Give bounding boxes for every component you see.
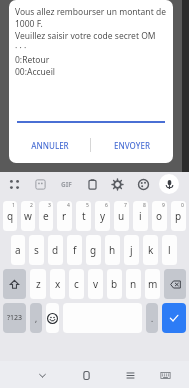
- button[interactable]: ANNULER: [9, 133, 90, 157]
- staticText: 00:Accueil: [15, 66, 56, 78]
- button[interactable]: k: [143, 235, 158, 265]
- button[interactable]: l: [162, 235, 177, 265]
- button[interactable]: g: [86, 235, 101, 265]
- staticText: 0: [181, 202, 184, 209]
- button[interactable]: 2: [21, 201, 35, 231]
- button[interactable]: z: [30, 269, 46, 299]
- button[interactable]: Voice input: [159, 174, 179, 194]
- button[interactable]: h: [105, 235, 120, 265]
- button[interactable]: Switch keyboard: [154, 364, 176, 386]
- button[interactable]: 7: [114, 201, 129, 231]
- staticText: l: [168, 243, 171, 257]
- staticText: c: [74, 277, 79, 291]
- button[interactable]: x: [50, 269, 65, 299]
- button[interactable]: ?123: [3, 303, 26, 333]
- button[interactable]: Settings: [107, 174, 127, 194]
- button[interactable]: Home: [75, 364, 97, 386]
- button[interactable]: m: [145, 269, 160, 299]
- staticText: 6: [105, 202, 108, 209]
- button[interactable]: 9: [152, 201, 167, 231]
- button[interactable]: Themes: [133, 174, 153, 194]
- staticText: o: [156, 209, 163, 223]
- staticText: y: [100, 209, 106, 223]
- button[interactable]: Stickers: [30, 174, 50, 194]
- button[interactable]: ,: [30, 303, 42, 333]
- button[interactable]: 4: [57, 201, 72, 231]
- staticText: ,: [35, 313, 38, 324]
- button[interactable]: Shift: [3, 269, 26, 299]
- staticText: f: [73, 243, 77, 257]
- staticText: r: [62, 209, 67, 223]
- button[interactable]: Back: [31, 364, 53, 386]
- staticText: q: [7, 209, 14, 223]
- button[interactable]: b: [107, 269, 122, 299]
- staticText: t: [82, 209, 86, 223]
- staticText: a: [15, 243, 21, 257]
- staticText: ENVOYER: [114, 140, 150, 151]
- staticText: ANNULER: [31, 140, 69, 151]
- staticText: g: [90, 243, 97, 257]
- staticText: w: [24, 209, 32, 223]
- button[interactable]: Emoji: [46, 303, 59, 333]
- button[interactable]: s: [29, 235, 44, 265]
- staticText: n: [130, 277, 137, 291]
- staticText: p: [175, 209, 182, 223]
- button[interactable]: d: [48, 235, 63, 265]
- button[interactable]: f: [67, 235, 82, 265]
- button[interactable]: a: [11, 235, 25, 265]
- button[interactable]: 0: [171, 201, 186, 231]
- button[interactable]: Recents: [119, 364, 141, 386]
- staticText: u: [118, 209, 125, 223]
- button[interactable]: 1: [3, 201, 17, 231]
- button[interactable]: Keyboard layouts: [4, 174, 24, 194]
- staticText: k: [148, 243, 154, 257]
- staticText: z: [36, 277, 41, 291]
- staticText: 9: [162, 202, 165, 209]
- staticText: 8: [143, 202, 146, 209]
- staticText: 7: [124, 202, 127, 209]
- staticText: h: [109, 243, 116, 257]
- staticText: .: [151, 313, 154, 324]
- staticText: 2: [30, 202, 33, 209]
- button[interactable]: Clipboard: [82, 174, 102, 194]
- staticText: x: [55, 277, 61, 291]
- button[interactable]: 6: [95, 201, 110, 231]
- button[interactable]: GIF: [56, 174, 76, 194]
- staticText: v: [93, 277, 99, 291]
- staticText: ?123: [7, 313, 23, 323]
- button[interactable]: 8: [133, 201, 148, 231]
- staticText: 3: [48, 202, 51, 209]
- button[interactable]: v: [88, 269, 103, 299]
- staticText: j: [130, 243, 133, 257]
- staticText: d: [52, 243, 59, 257]
- staticText: GIF: [61, 180, 72, 189]
- button[interactable]: Backspace: [164, 269, 186, 299]
- button[interactable]: c: [69, 269, 84, 299]
- staticText: 5: [86, 202, 89, 209]
- button[interactable]: Enter: [162, 303, 186, 333]
- button[interactable]: 3: [39, 201, 53, 231]
- staticText: i: [139, 209, 142, 223]
- button[interactable]: ENVOYER: [91, 133, 173, 157]
- staticText: b: [111, 277, 118, 291]
- staticText: s: [34, 243, 39, 257]
- button[interactable]: .: [146, 303, 158, 333]
- button[interactable]: j: [124, 235, 139, 265]
- staticText: 1: [12, 202, 15, 209]
- button[interactable]: n: [126, 269, 141, 299]
- staticText: m: [148, 277, 158, 291]
- staticText: Vous allez rembourser un montant de: [15, 6, 166, 18]
- button[interactable]: 5: [76, 201, 91, 231]
- staticText: 4: [67, 202, 70, 209]
- staticText: · · ·: [15, 42, 27, 54]
- staticText: e: [43, 209, 49, 223]
- staticText: 1000 F.: [15, 18, 43, 30]
- staticText: 0:Retour: [15, 54, 50, 66]
- staticText: Veuillez saisir votre code secret OM: [15, 30, 156, 42]
